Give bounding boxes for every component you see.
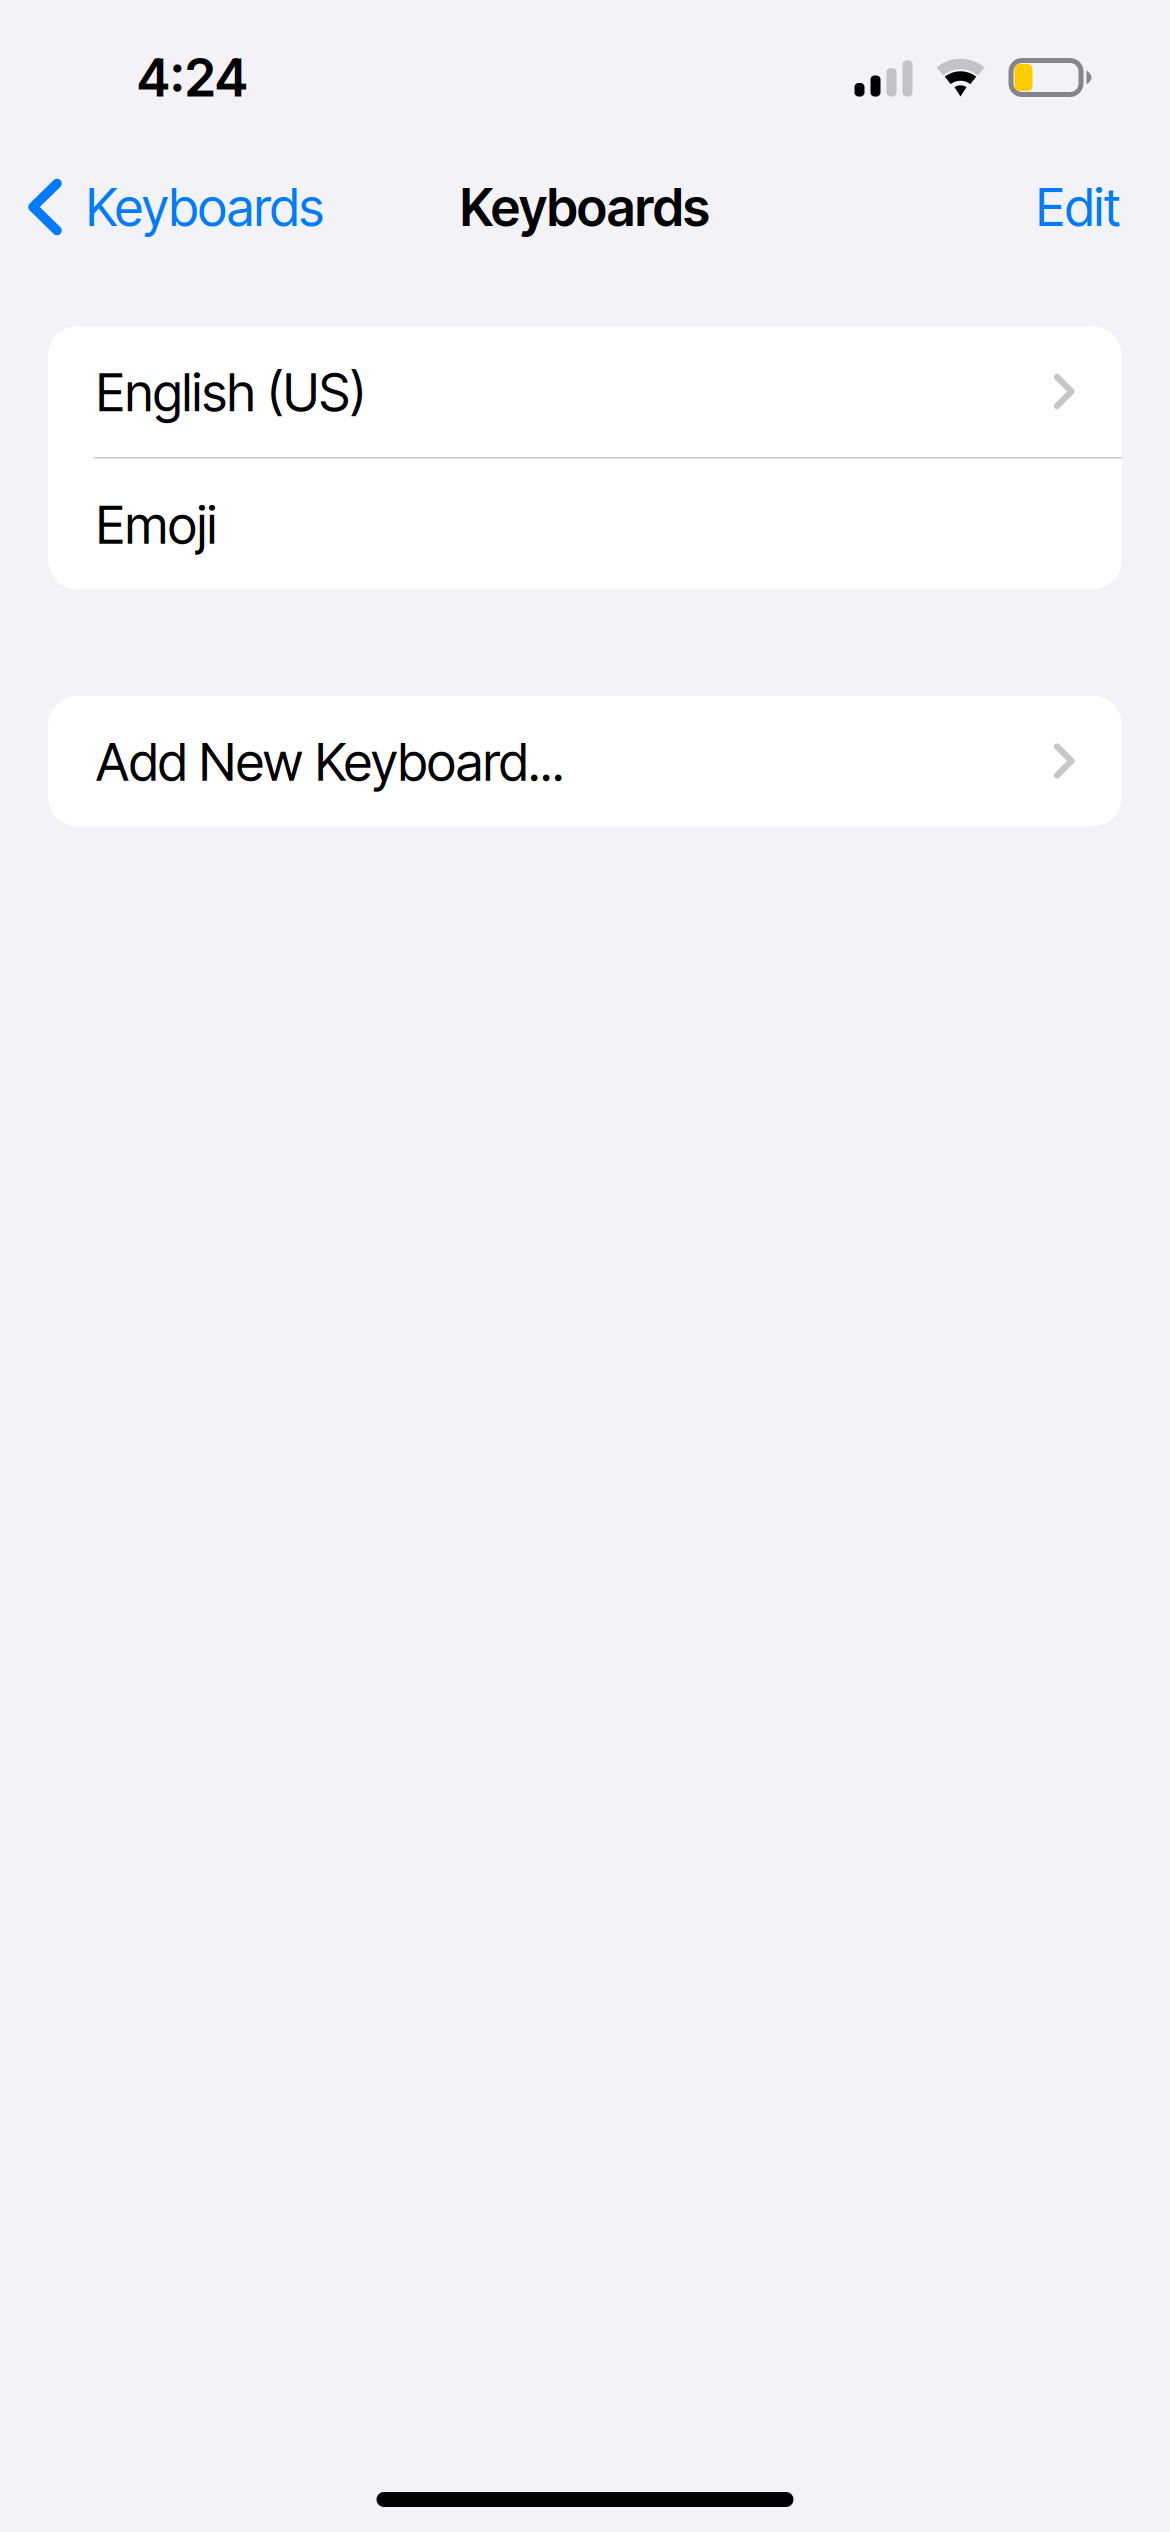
staticText: 4:24 [137, 46, 248, 109]
staticText: Keyboards [86, 175, 324, 238]
staticText: Emoji [96, 493, 217, 556]
button[interactable]: Back to Keyboards [0, 141, 340, 273]
button[interactable]: English (US) [48, 326, 1122, 457]
staticText: English (US) [96, 361, 366, 424]
button[interactable]: Add New Keyboard... [48, 695, 1122, 826]
staticText: Keyboards [460, 175, 710, 238]
staticText: Edit [1036, 175, 1120, 238]
button[interactable]: Emoji [48, 458, 1122, 589]
button[interactable]: Edit [1008, 141, 1170, 273]
staticText: Add New Keyboard... [96, 730, 564, 793]
